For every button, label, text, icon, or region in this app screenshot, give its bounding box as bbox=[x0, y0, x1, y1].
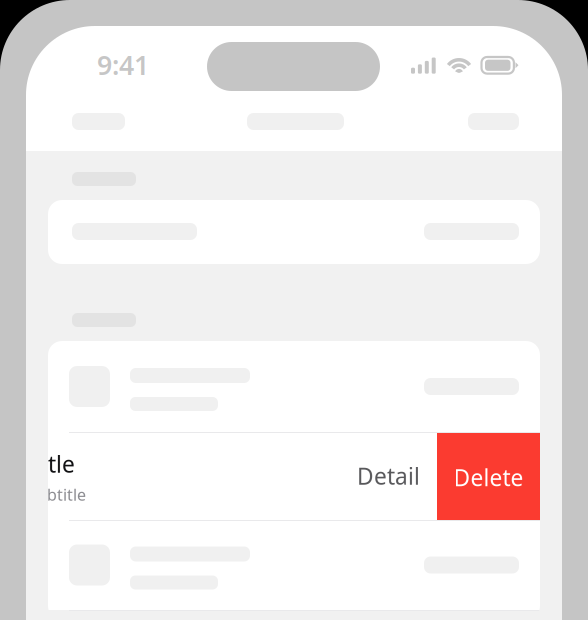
button[interactable]: Detail bbox=[337, 432, 437, 520]
staticText: Delete bbox=[453, 462, 523, 492]
button[interactable]: Settings row bbox=[48, 200, 540, 264]
staticText: Subtitle bbox=[28, 484, 86, 505]
staticText: 9:41 bbox=[97, 47, 149, 82]
button[interactable]: List item bbox=[48, 520, 540, 610]
staticText: Title bbox=[29, 449, 75, 479]
button[interactable]: List item bbox=[48, 341, 540, 432]
button[interactable]: Delete bbox=[437, 432, 540, 520]
staticText: Detail bbox=[357, 461, 420, 491]
